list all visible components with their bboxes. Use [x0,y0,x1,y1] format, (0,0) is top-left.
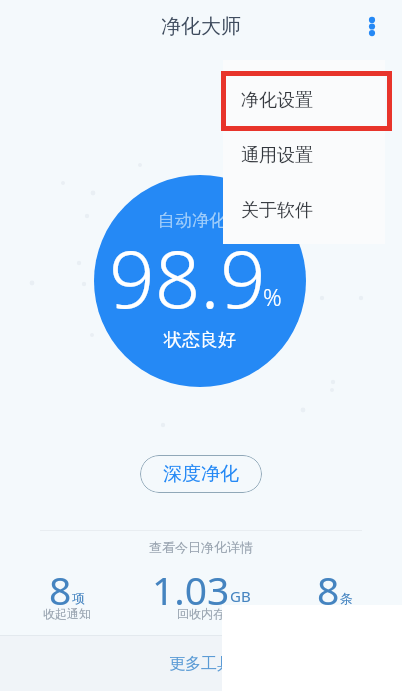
staticText: 状态良好 [164,329,236,352]
button[interactable]: 1.03 [134,563,268,631]
staticText: 条 [340,590,353,606]
staticText: 关于软件 [241,199,313,222]
staticText: 1.03 [152,563,230,616]
staticText: GB [230,586,251,606]
staticText: 8 [49,563,72,616]
staticText: % [263,281,282,312]
staticText: 净化大师 [161,14,241,39]
staticText: 净化设置 [241,89,313,112]
staticText: 更多工具 [169,654,233,674]
staticText: 回收内存 [177,606,225,621]
staticText: 收起通知 [43,606,91,621]
button[interactable]: 8 [0,563,134,631]
button[interactable]: 净化设置 [223,73,385,128]
staticText: 深度净化 [163,462,239,486]
staticText: 查看今日净化详情 [0,539,402,555]
staticText: 98.9 [109,222,266,331]
button[interactable]: More options [350,4,394,48]
staticText: 项 [72,590,85,606]
button[interactable]: 关于软件 [223,183,385,238]
staticText: 自动净化中 [158,210,243,231]
button[interactable]: 通用设置 [223,128,385,183]
staticText: 通用设置 [241,144,313,167]
button[interactable]: 8 [268,563,402,631]
button[interactable]: 更多工具 [0,636,402,691]
button[interactable]: 深度净化 [140,455,262,493]
staticText: 8 [317,563,340,616]
